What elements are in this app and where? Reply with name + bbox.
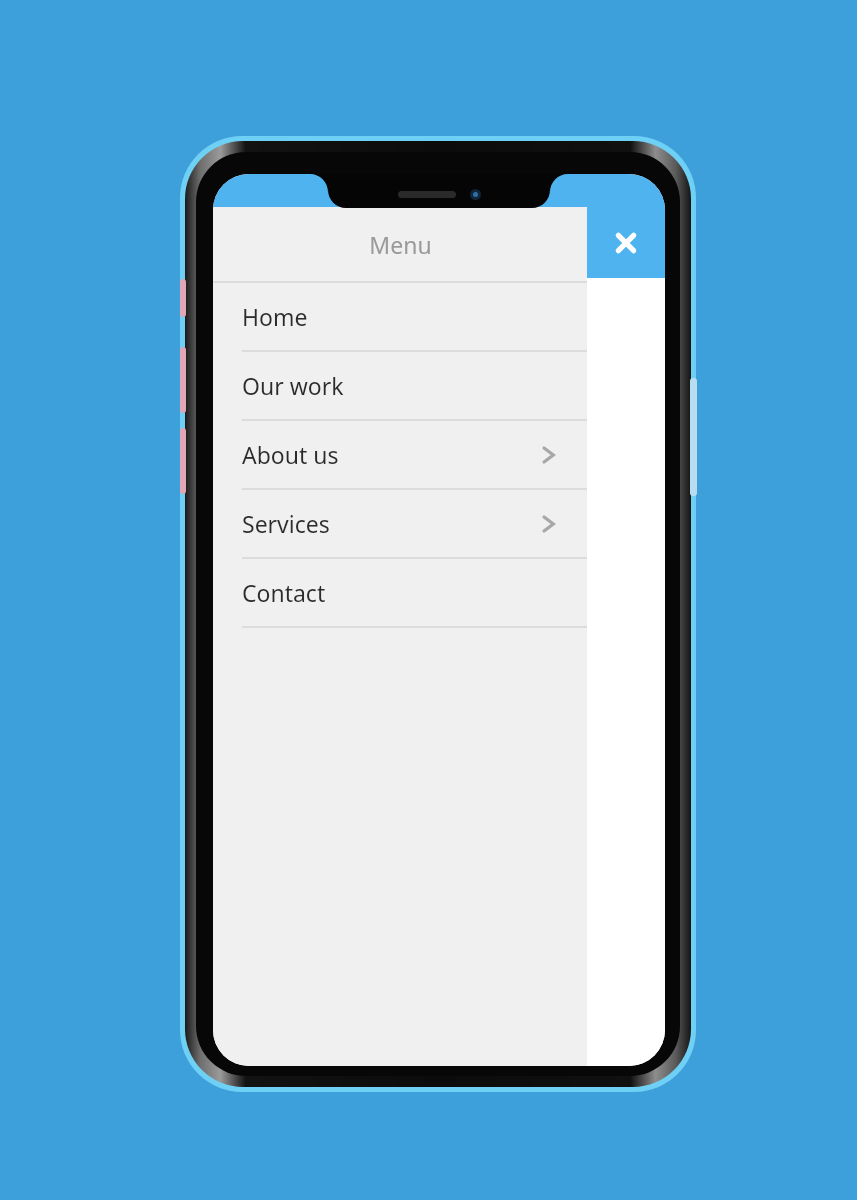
staticText: Menu	[369, 229, 432, 260]
button[interactable]: Close menu	[587, 207, 665, 278]
staticText: Services	[242, 508, 330, 539]
staticText: Our work	[242, 370, 344, 401]
staticText: About us	[242, 439, 339, 470]
button[interactable]: Contact	[213, 559, 587, 628]
button[interactable]: Services	[213, 490, 587, 559]
staticText: Home	[242, 301, 308, 332]
staticText: Contact	[242, 577, 326, 608]
button[interactable]: Our work	[213, 352, 587, 421]
button[interactable]: About us	[213, 421, 587, 490]
button[interactable]: Home	[213, 283, 587, 352]
